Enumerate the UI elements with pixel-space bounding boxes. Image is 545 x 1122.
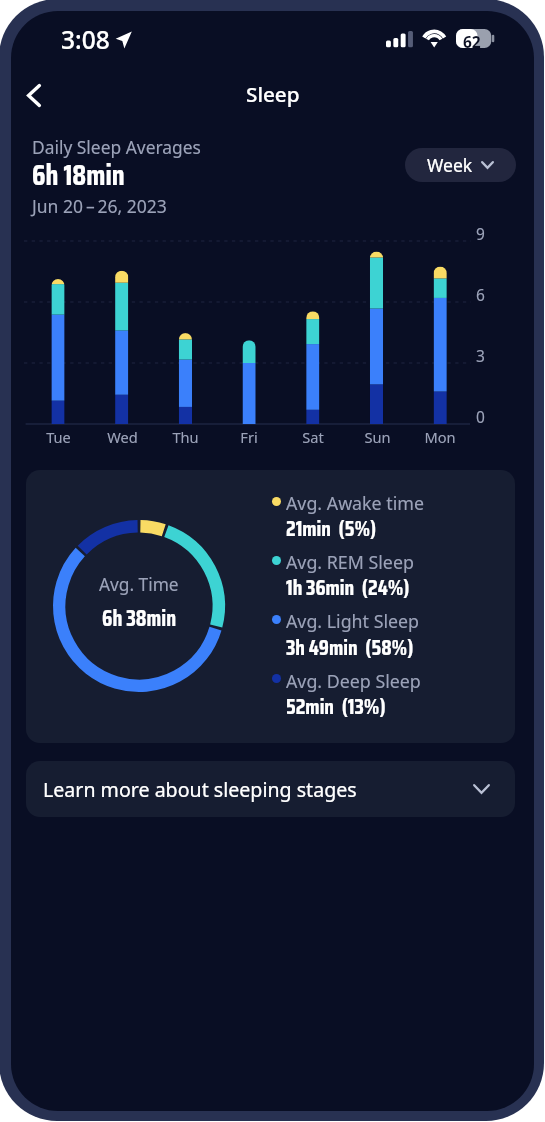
staticText: 0 <box>476 406 485 427</box>
button[interactable]: Learn more about sleeping stages <box>26 761 515 817</box>
staticText: Avg. Time <box>99 573 179 595</box>
staticText: Wed <box>107 427 138 447</box>
staticText: Learn more about sleeping stages <box>43 776 473 803</box>
staticText: Avg. REM Sleep <box>286 550 414 574</box>
staticText: Avg. Deep Sleep <box>286 669 421 693</box>
staticText: Thu <box>172 427 199 447</box>
staticText: Sat <box>302 427 324 447</box>
staticText: 1h 36min (24%) <box>286 571 410 605</box>
button[interactable]: Back <box>16 77 52 113</box>
staticText: 3:08 <box>61 23 110 56</box>
staticText: Sun <box>364 427 391 447</box>
staticText: Sleep <box>246 80 300 108</box>
staticText: Week <box>427 153 473 177</box>
staticText: 9 <box>476 223 485 244</box>
staticText: Tue <box>46 427 71 447</box>
staticText: Avg. Light Sleep <box>286 609 420 633</box>
staticText: 3h 49min (58%) <box>286 631 414 665</box>
staticText: 21min (5%) <box>286 512 377 546</box>
staticText: 62 <box>463 31 481 50</box>
staticText: 52min (13%) <box>286 690 386 724</box>
staticText: 6h 18min <box>32 153 125 198</box>
button[interactable]: Week <box>405 148 516 182</box>
staticText: 6h 38min <box>102 601 177 627</box>
staticText: Fri <box>240 427 258 447</box>
staticText: Daily Sleep Averages <box>32 135 201 159</box>
staticText: 3 <box>476 345 485 366</box>
staticText: Jun 20 – 26, 2023 <box>32 194 167 218</box>
staticText: Mon <box>424 427 456 447</box>
staticText: 6 <box>476 284 485 305</box>
staticText: Avg. Awake time <box>286 491 424 515</box>
